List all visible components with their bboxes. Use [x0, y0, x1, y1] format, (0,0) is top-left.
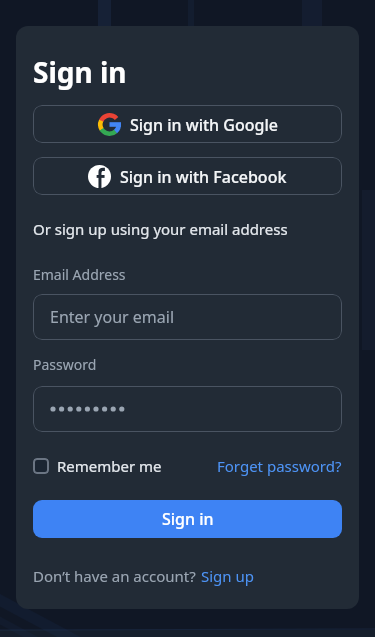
staticText: Email Address — [33, 265, 126, 284]
staticText: Or sign up using your email address — [33, 219, 288, 239]
button[interactable] — [33, 458, 49, 474]
staticText: Sign in — [162, 508, 214, 530]
button[interactable]: Sign up — [201, 566, 254, 586]
staticText: Sign in with Facebook — [120, 166, 287, 188]
button[interactable]: Sign in — [33, 500, 342, 538]
button[interactable]: Forget password? — [217, 456, 342, 476]
button[interactable]: Sign in with Google — [33, 105, 342, 143]
button[interactable]: Sign in with Facebook — [33, 157, 342, 195]
staticText: Remember me — [57, 456, 162, 476]
staticText: Sign in with Google — [130, 114, 278, 136]
staticText: Sign in — [33, 53, 127, 91]
button[interactable]: Enter your email — [33, 294, 342, 340]
button[interactable] — [33, 386, 342, 432]
staticText: Don’t have an account? — [33, 566, 196, 586]
staticText: Enter your email — [50, 306, 175, 328]
staticText: Password — [33, 355, 97, 374]
